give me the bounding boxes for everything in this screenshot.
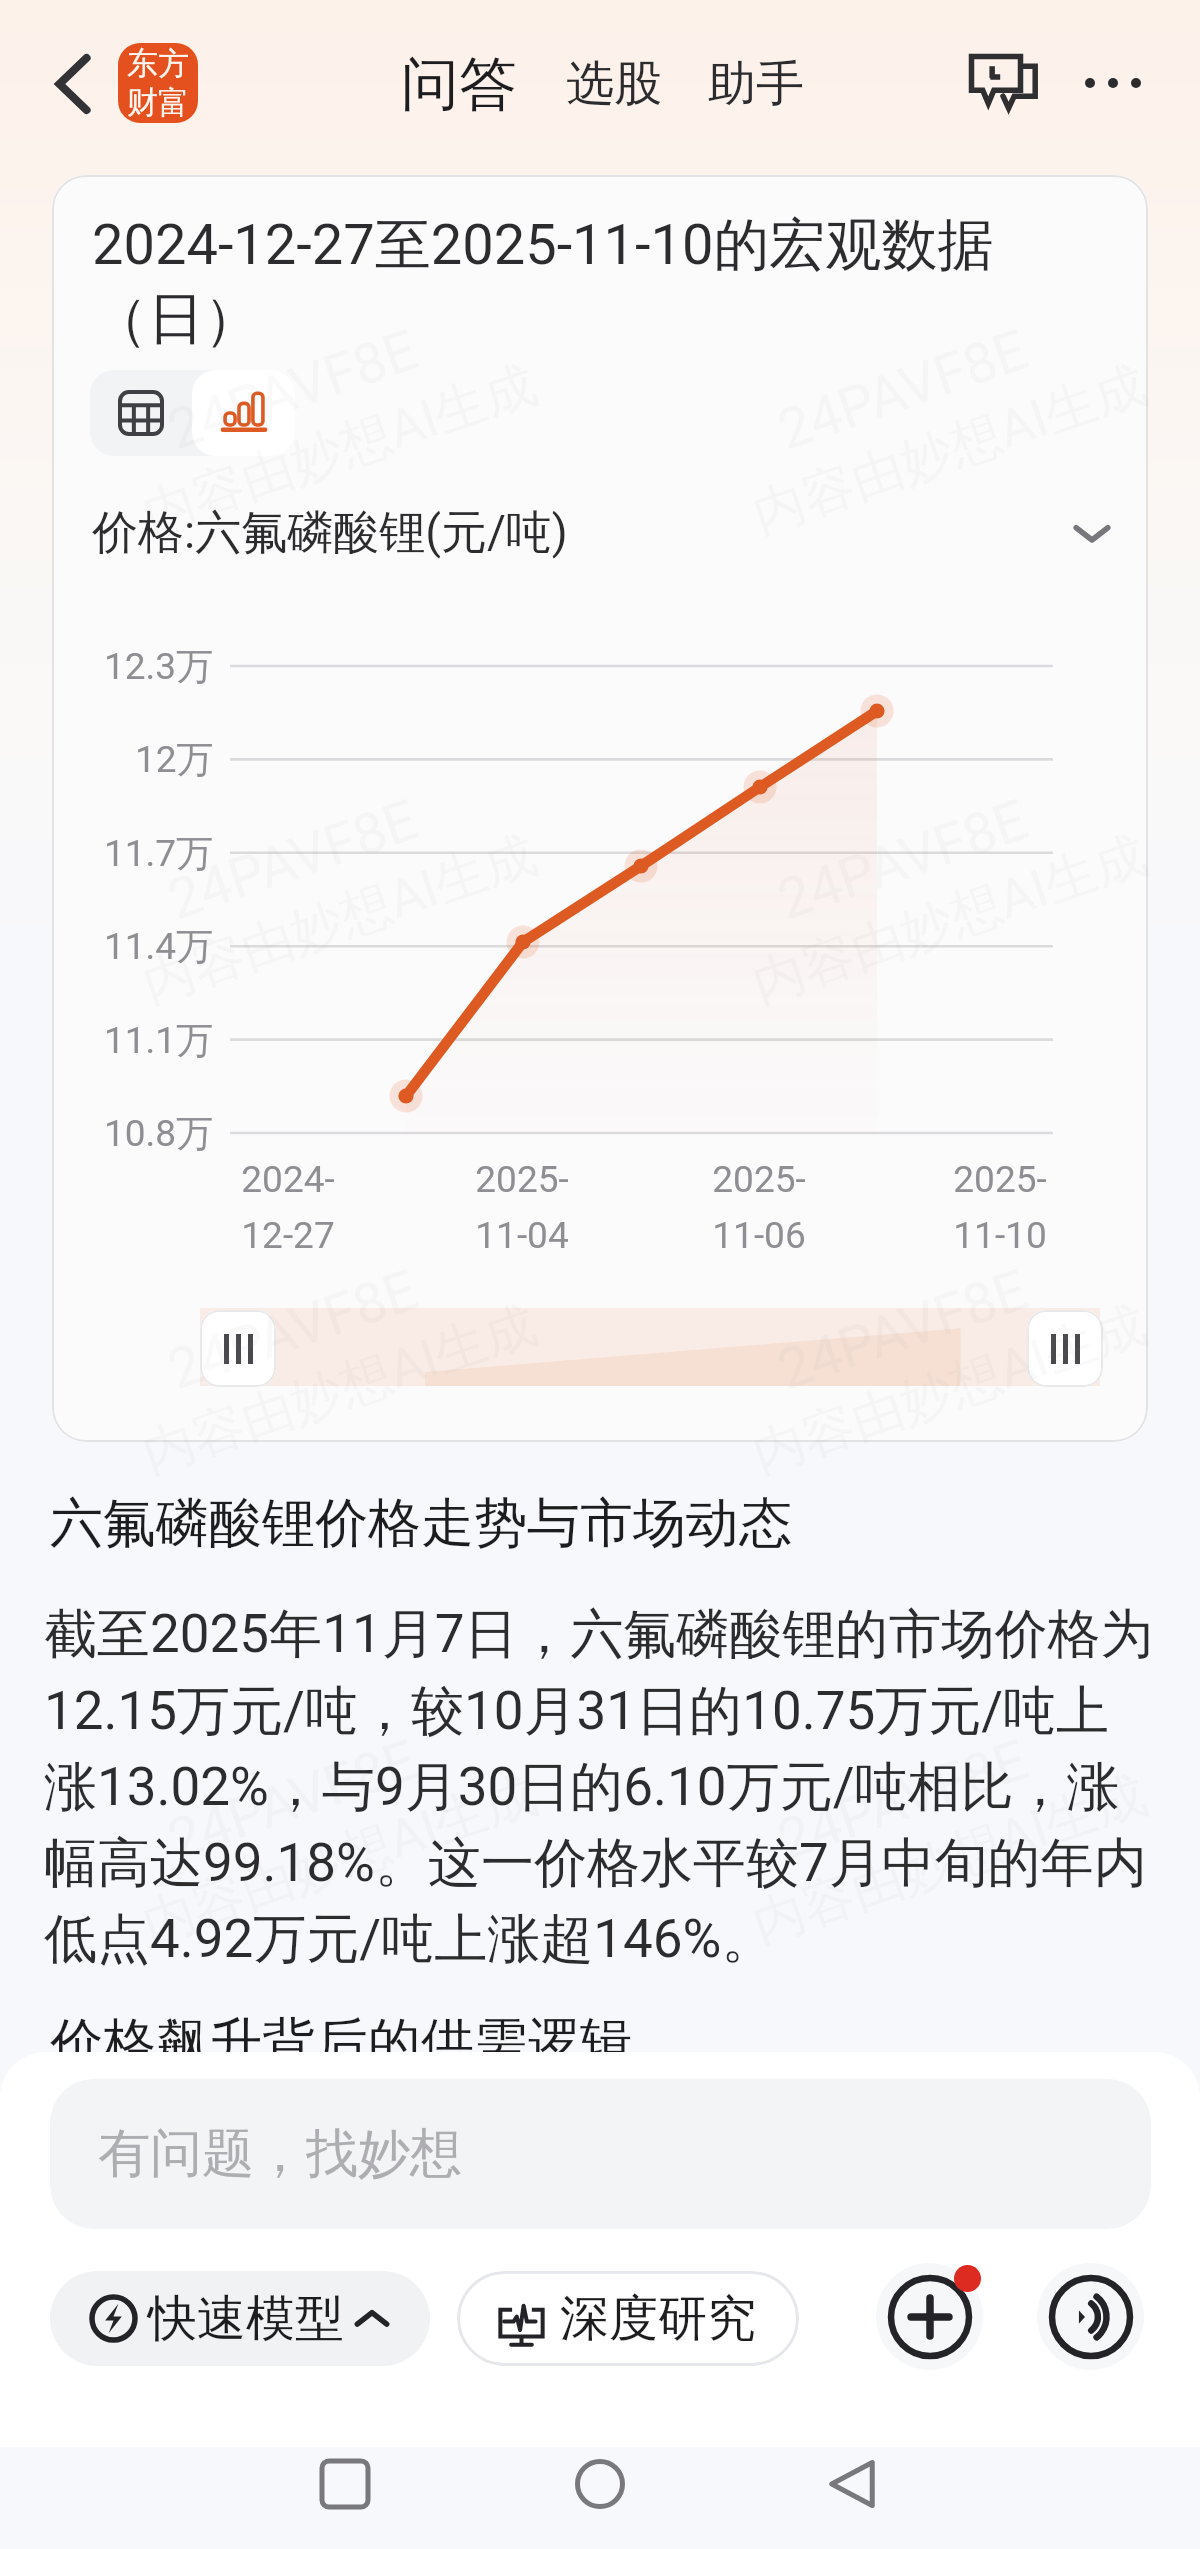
staticText: 选股 [566, 54, 662, 114]
button[interactable]: Recents [300, 2439, 390, 2529]
staticText: 2024- 12-27 [241, 1158, 335, 1257]
button[interactable]: 选股 [566, 46, 662, 122]
staticText: 11.1万 [104, 1017, 214, 1064]
button[interactable]: Voice input [1037, 2263, 1144, 2370]
button[interactable]: Range start [200, 1310, 276, 1387]
staticText: 24PAVF8E [160, 1256, 426, 1403]
button[interactable]: Chart view [192, 370, 295, 456]
button[interactable]: Navigate back [807, 2439, 897, 2529]
staticText: 24PAVF8E [770, 1726, 1036, 1873]
staticText: 价格:六氟磷酸锂(元/吨) [92, 504, 568, 562]
staticText: 内容由妙想AI生成 [744, 821, 1156, 1018]
staticText: 内容由妙想AI生成 [744, 2231, 1156, 2428]
staticText: 2025- 11-04 [475, 1158, 569, 1257]
staticText: 财富 [127, 83, 189, 122]
staticText: 24PAVF8E [160, 786, 426, 933]
staticText: 价格飙升背后的供需逻辑 [50, 2010, 633, 2077]
staticText: 2025- 11-06 [712, 1158, 806, 1257]
button[interactable]: Range end [1027, 1310, 1103, 1387]
staticText: 内容由妙想AI生成 [134, 821, 546, 1018]
button[interactable]: Back [29, 40, 117, 128]
staticText: 24PAVF8E [770, 786, 1036, 933]
button[interactable]: East Money [118, 43, 198, 123]
staticText: 24PAVF8E [770, 2196, 1036, 2343]
staticText: 快速模型 [148, 2288, 344, 2350]
button[interactable]: 深度研究 [457, 2271, 799, 2366]
button[interactable]: Messages [958, 38, 1048, 128]
button[interactable]: 价格:六氟磷酸锂(元/吨) [86, 488, 1114, 578]
button[interactable]: 有问题，找妙想 [50, 2079, 1151, 2229]
staticText: 24PAVF8E [160, 2196, 426, 2343]
staticText: 24PAVF8E [770, 1256, 1036, 1403]
staticText: 24PAVF8E [160, 316, 426, 463]
staticText: 12万 [135, 736, 214, 783]
button[interactable]: 快速模型 [50, 2271, 430, 2366]
staticText: 有问题，找妙想 [98, 2121, 462, 2187]
staticText: 内容由妙想AI生成 [744, 1761, 1156, 1958]
button[interactable]: Add [876, 2263, 983, 2370]
button[interactable]: 问答 [401, 44, 517, 124]
staticText: 助手 [708, 54, 804, 114]
staticText: 2025- 11-10 [953, 1158, 1047, 1257]
staticText: 11.4万 [104, 923, 214, 970]
staticText: 东方 [127, 44, 189, 83]
staticText: 截至2025年11月7日，六氟磷酸锂的市场价格为12.15万元/吨，较10月31… [44, 1601, 1158, 1973]
button[interactable]: Table view [90, 370, 192, 456]
button[interactable]: 助手 [708, 46, 804, 122]
staticText: 内容由妙想AI生成 [134, 2231, 546, 2428]
staticText: 11.7万 [104, 830, 214, 877]
staticText: 12.3万 [104, 643, 214, 690]
staticText: 2024-12-27至2025-11-10的宏观数据（日） [92, 210, 1052, 355]
staticText: 六氟磷酸锂价格走势与市场动态 [50, 1490, 792, 1557]
staticText: 24PAVF8E [160, 1726, 426, 1873]
staticText: 深度研究 [560, 2288, 756, 2350]
button[interactable]: More options [1068, 38, 1158, 128]
staticText: 内容由妙想AI生成 [134, 1291, 546, 1488]
button[interactable]: Home [555, 2439, 645, 2529]
staticText: 内容由妙想AI生成 [134, 351, 546, 548]
staticText: 内容由妙想AI生成 [744, 1291, 1156, 1488]
staticText: 问答 [401, 48, 517, 121]
staticText: 10.8万 [104, 1110, 214, 1157]
staticText: 内容由妙想AI生成 [134, 1761, 546, 1958]
staticText: 内容由妙想AI生成 [744, 351, 1156, 548]
